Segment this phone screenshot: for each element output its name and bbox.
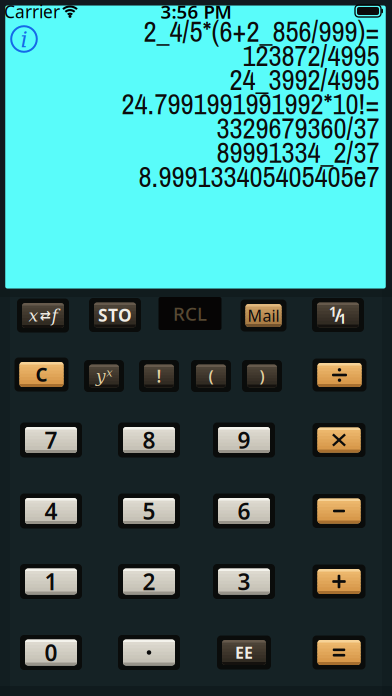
staticText: 2 — [142, 566, 155, 596]
button[interactable]: C — [14, 357, 68, 391]
staticText: 24.7991991991992*10!= — [121, 85, 379, 123]
button[interactable]: divide — [312, 358, 366, 391]
staticText: Carrier — [4, 0, 60, 23]
button[interactable]: 2 — [118, 564, 180, 599]
button[interactable]: close paren — [242, 360, 282, 392]
staticText: 8.999133405405405e7 — [138, 157, 379, 196]
staticText: 1 — [329, 303, 337, 320]
staticText: 3 — [237, 566, 250, 596]
staticText: ⇄ — [39, 308, 50, 323]
button[interactable]: EE — [217, 635, 271, 669]
button[interactable]: 1 over 1 — [312, 298, 364, 332]
button[interactable]: plus — [312, 564, 365, 598]
button[interactable]: decimal point — [118, 635, 180, 670]
staticText: 0 — [44, 637, 57, 667]
staticText: x — [106, 366, 112, 379]
button[interactable]: equals — [312, 635, 365, 669]
button[interactable]: 8 — [118, 422, 180, 457]
staticText: y — [96, 366, 106, 386]
staticText: C — [35, 362, 47, 387]
staticText: / — [334, 303, 341, 326]
staticText: 6 — [237, 496, 250, 526]
button[interactable]: 7 — [20, 422, 82, 457]
button[interactable]: 3 — [213, 564, 275, 599]
staticText: x — [28, 305, 38, 326]
button[interactable]: 6 — [213, 493, 275, 528]
button[interactable]: y to the x — [84, 360, 124, 392]
staticText: 89991334_2/37 — [216, 133, 379, 172]
staticText: 1 — [338, 310, 346, 327]
staticText: i — [20, 26, 27, 53]
staticText: 2_4/5*(6+2_856/999)= — [143, 12, 379, 51]
staticText: ! — [156, 364, 161, 387]
staticText: 9 — [237, 425, 250, 455]
button[interactable]: open paren — [191, 360, 231, 392]
button[interactable]: minus — [312, 494, 365, 528]
staticText: 1 — [44, 566, 57, 596]
staticText: 4 — [44, 496, 57, 526]
button[interactable]: factorial — [139, 360, 179, 392]
staticText: 3329679360/37 — [216, 109, 379, 147]
button[interactable]: STO — [89, 298, 141, 332]
staticText: f — [51, 305, 57, 326]
staticText: STO — [98, 303, 132, 326]
button[interactable]: Info — [9, 24, 38, 53]
staticText: 123872/4995 — [242, 36, 379, 75]
staticText: EE — [235, 642, 253, 663]
button[interactable]: 0 — [20, 635, 82, 670]
staticText: 5 — [142, 496, 155, 526]
button[interactable]: 5 — [118, 493, 180, 528]
button[interactable]: 4 — [20, 493, 82, 528]
staticText: 24_3992/4995 — [229, 60, 379, 99]
staticText: 3:56 PM — [160, 0, 231, 24]
staticText: ) — [259, 365, 264, 387]
staticText: 7 — [44, 425, 57, 455]
button[interactable]: multiply — [312, 423, 365, 457]
button[interactable]: 9 — [213, 422, 275, 457]
button[interactable]: x exchange f — [17, 298, 69, 332]
button[interactable]: RCL — [158, 297, 221, 330]
staticText: 8 — [142, 425, 155, 455]
button[interactable]: Mail — [240, 299, 286, 331]
button[interactable]: 1 — [20, 564, 82, 599]
staticText: ( — [208, 365, 213, 387]
staticText: Mail — [247, 305, 279, 326]
staticText: RCL — [173, 301, 207, 326]
